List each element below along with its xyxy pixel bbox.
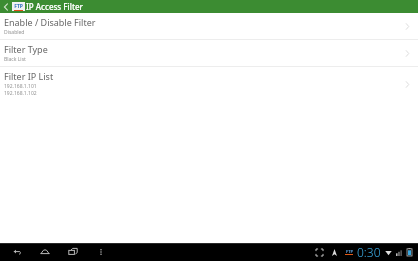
- button[interactable]: Filter Type: [0, 40, 418, 66]
- staticText: Black List: [4, 56, 26, 63]
- staticText: FTP: [346, 249, 353, 254]
- staticText: IP Access Filter: [26, 1, 83, 12]
- staticText: Enable / Disable Filter: [4, 16, 96, 28]
- staticText: Filter IP List: [4, 70, 54, 82]
- button[interactable]: Back: [8, 243, 26, 261]
- button[interactable]: Enable / Disable Filter: [0, 13, 418, 39]
- button[interactable]: Back: [0, 0, 12, 13]
- button[interactable]: More options: [92, 243, 110, 261]
- staticText: 0:30: [357, 244, 381, 260]
- staticText: FTP: [14, 3, 23, 10]
- button[interactable]: Recent apps: [64, 243, 82, 261]
- staticText: Filter Type: [4, 43, 48, 55]
- staticText: 192.168.1.102: [4, 90, 37, 97]
- staticText: 192.168.1.101: [4, 83, 37, 90]
- button[interactable]: Home: [36, 243, 54, 261]
- button[interactable]: Filter IP List: [0, 67, 418, 100]
- staticText: Disabled: [4, 29, 25, 36]
